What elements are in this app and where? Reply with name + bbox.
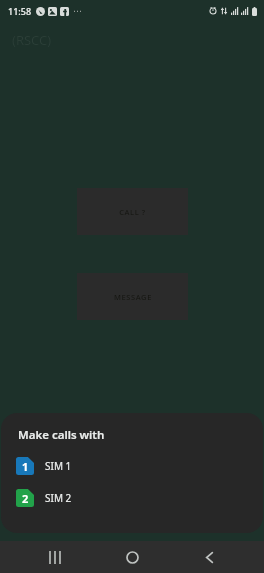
button[interactable]: Home (110, 541, 154, 573)
staticText: (RSCC) (12, 31, 52, 49)
button[interactable]: 2 (1, 487, 263, 509)
staticText: 11:58 (8, 5, 32, 17)
staticText: MESSAGE (114, 292, 152, 302)
staticText: Make calls with (18, 427, 105, 443)
staticText: 2 (22, 491, 29, 506)
staticText: CALL ? (119, 207, 146, 217)
button[interactable]: Back (187, 541, 231, 573)
staticText: SIM 2 (45, 491, 72, 505)
button[interactable]: 1 (1, 455, 263, 477)
staticText: 1 (22, 459, 29, 474)
staticText: ⋯ (73, 6, 82, 16)
staticText: SIM 1 (45, 459, 72, 473)
button[interactable]: Recent apps (33, 541, 77, 573)
